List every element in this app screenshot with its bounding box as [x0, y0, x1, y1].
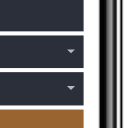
button[interactable]	[0, 0, 84, 31]
button[interactable]	[0, 110, 84, 128]
button[interactable]: Expand row	[64, 82, 78, 96]
button[interactable]: Expand row	[0, 72, 84, 105]
button[interactable]: Expand row	[64, 45, 78, 59]
button[interactable]: Expand row	[0, 35, 84, 68]
